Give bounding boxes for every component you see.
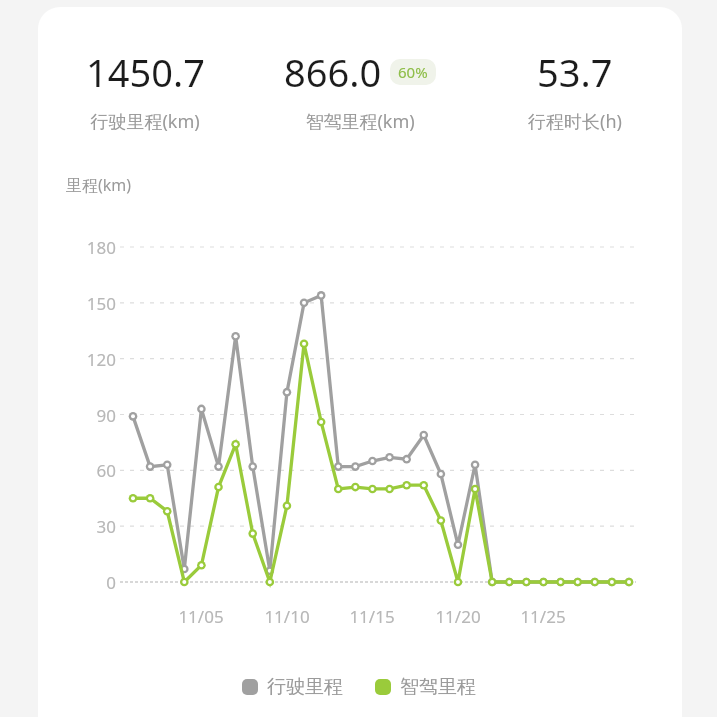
staticText: 行驶里程: [267, 675, 343, 699]
staticText: 53.7: [537, 46, 613, 98]
staticText: 150: [60, 292, 116, 315]
staticText: 180: [60, 236, 116, 259]
staticText: 11/10: [247, 605, 327, 628]
button[interactable]: 1450.7: [38, 46, 252, 134]
button[interactable]: 53.7: [467, 46, 682, 134]
staticText: 11/25: [503, 605, 583, 628]
staticText: 11/15: [332, 605, 412, 628]
staticText: 90: [60, 404, 116, 427]
other: 行驶里程: [242, 679, 258, 695]
staticText: 0: [60, 571, 116, 594]
staticText: 智驾里程: [400, 675, 476, 699]
staticText: 11/05: [161, 605, 241, 628]
other: 智驾里程: [375, 679, 391, 695]
staticText: 行程时长(h): [528, 109, 622, 134]
staticText: 行驶里程(km): [90, 109, 200, 134]
staticText: 866.0: [284, 46, 382, 98]
staticText: 11/20: [418, 605, 498, 628]
staticText: 里程(km): [66, 174, 132, 196]
staticText: 60%: [398, 62, 428, 82]
staticText: 智驾里程(km): [305, 109, 415, 134]
button[interactable]: 866.0: [252, 46, 467, 134]
staticText: 120: [60, 348, 116, 371]
button[interactable]: 行驶里程: [240, 670, 345, 704]
staticText: 1450.7: [86, 46, 205, 98]
button[interactable]: 智驾里程: [373, 670, 478, 704]
staticText: 30: [60, 515, 116, 538]
staticText: 60: [60, 459, 116, 482]
